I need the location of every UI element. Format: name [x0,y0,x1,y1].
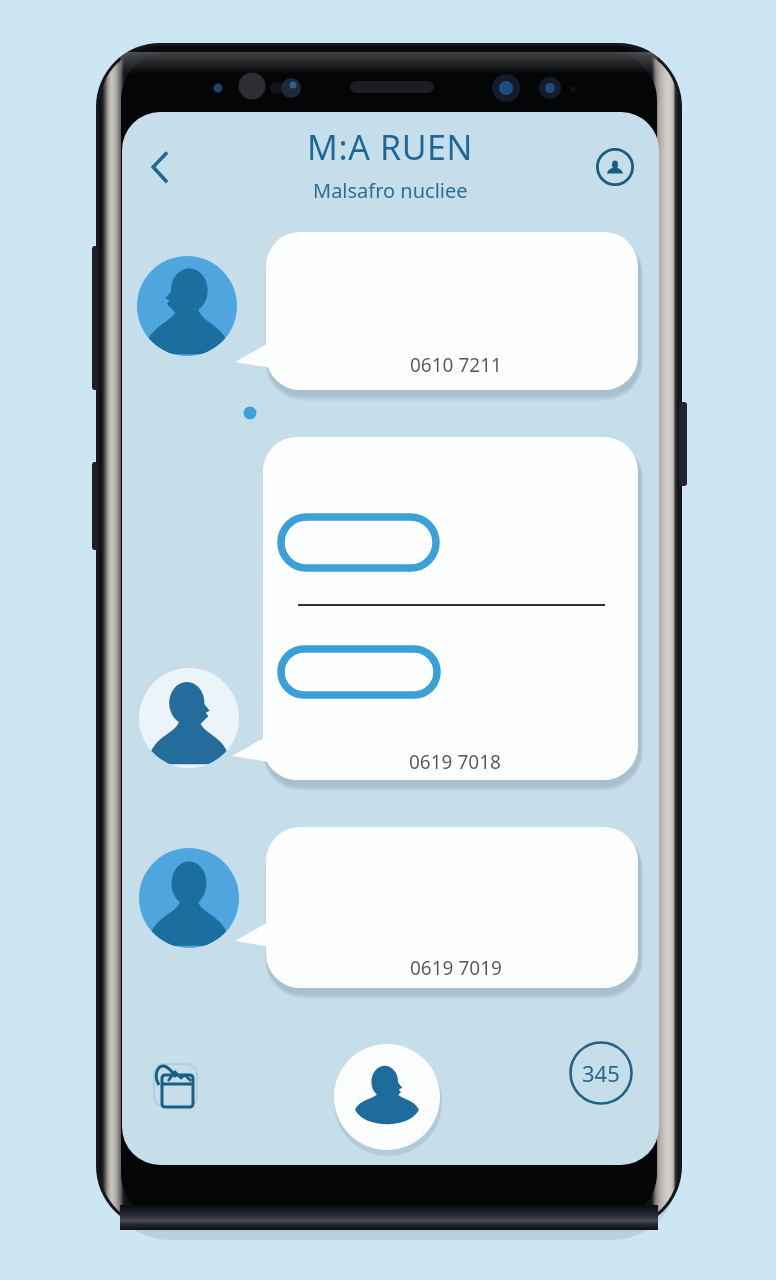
button[interactable]: Contact avatar [137,256,237,356]
staticText: 0610 7211 [410,352,502,378]
staticText: Malsafro nucliee [313,177,468,204]
button[interactable]: 0610 7211 [266,232,638,390]
staticText: 0619 7019 [410,955,502,981]
button[interactable]: Attach image [148,1056,206,1114]
button[interactable]: 0619 7019 [266,827,638,988]
button[interactable]: 0619 7018 [263,437,638,780]
button[interactable]: Profile [591,143,639,191]
button[interactable]: Contact avatar [139,668,239,768]
button[interactable]: Counter 345 [569,1041,633,1105]
staticText: 345 [582,1058,620,1088]
button[interactable]: Back [132,138,190,196]
button[interactable]: Contact avatar [139,848,239,948]
staticText: M:A RUEN [307,124,474,170]
staticText: 0619 7018 [409,749,501,775]
button[interactable]: New message [334,1044,440,1150]
